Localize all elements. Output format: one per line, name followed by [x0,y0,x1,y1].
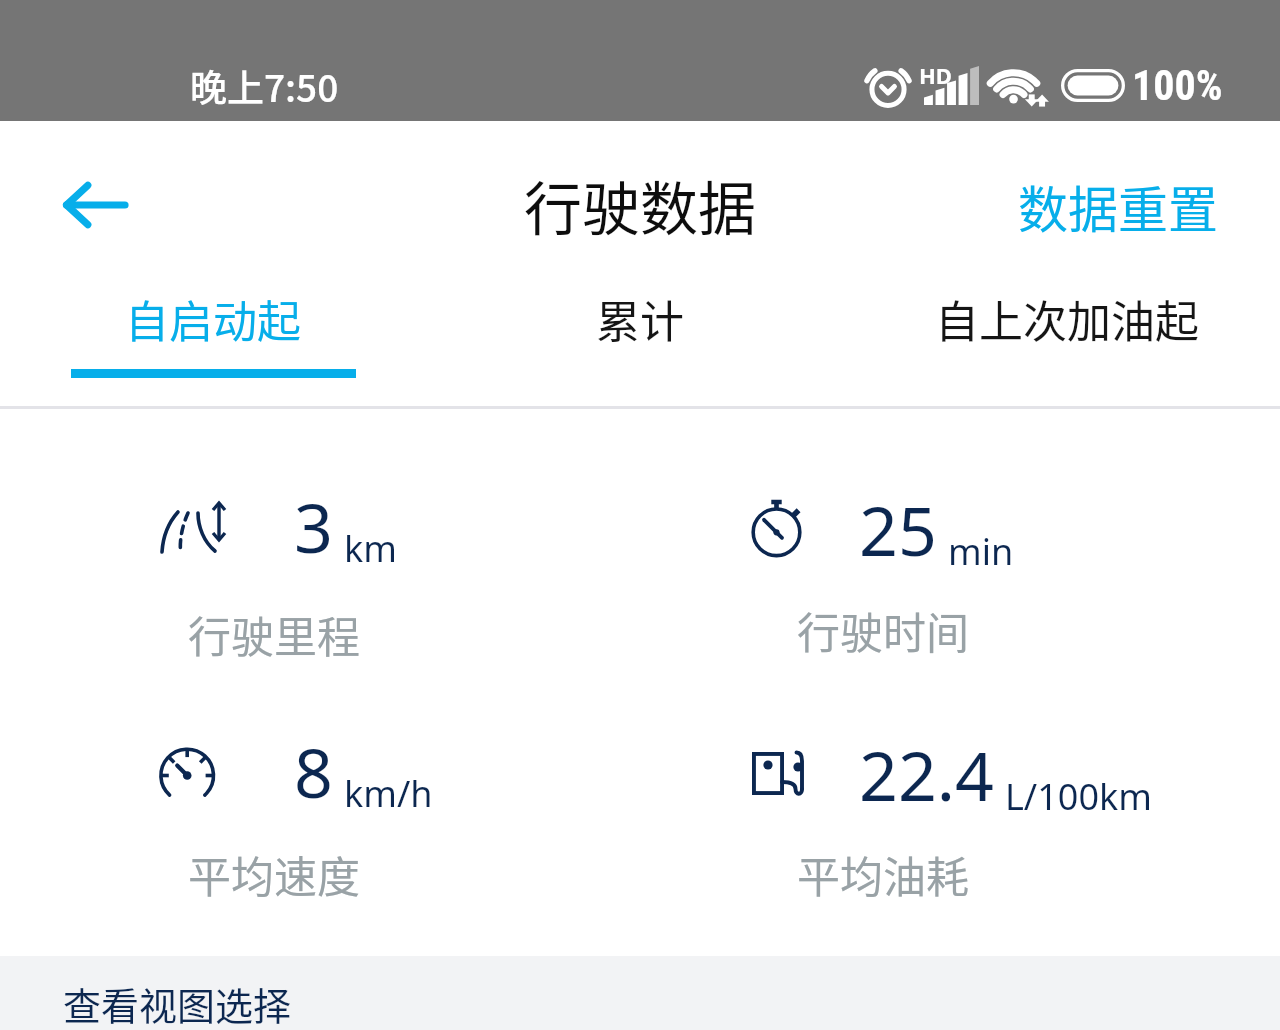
staticText: 100% [1132,61,1223,110]
staticText: 行驶里程 [188,603,360,665]
staticText: 查看视图选择 [63,976,292,1030]
staticText: km/h [344,769,433,818]
staticText: HD [919,60,952,90]
staticText: 行驶时间 [797,599,969,661]
button[interactable]: 累计 [426,287,853,387]
staticText: 平均油耗 [797,843,969,905]
staticText: 自上次加油起 [935,287,1199,351]
button[interactable]: 数据重置 [1018,170,1218,242]
staticText: 晚上7:50 [190,59,339,113]
staticText: 22.4 [859,728,994,821]
staticText: L/100km [1005,772,1152,821]
button[interactable]: 查看视图选择 [0,956,1280,1030]
button[interactable]: 自启动起 [0,287,426,387]
staticText: km [344,524,397,573]
staticText: 平均速度 [188,843,360,905]
staticText: 数据重置 [1018,170,1218,242]
staticText: 自启动起 [125,287,301,351]
staticText: min [948,527,1014,576]
button[interactable]: Back [46,166,142,244]
staticText: 累计 [596,287,684,351]
staticText: 行驶数据 [524,163,757,247]
staticText: 8 [294,725,333,818]
button[interactable]: 自上次加油起 [853,287,1280,387]
staticText: 3 [294,480,333,573]
staticText: 25 [859,483,937,576]
